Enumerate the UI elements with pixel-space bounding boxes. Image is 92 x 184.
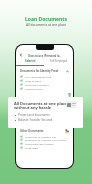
staticText: All Documents at one place — [14, 101, 68, 106]
staticText: Photocopy of Property File — [25, 135, 56, 138]
button[interactable]: Other Documents — [20, 129, 69, 133]
button[interactable] — [66, 101, 77, 108]
staticText: Self Employed — [50, 59, 68, 63]
button[interactable]: Salaried — [16, 59, 44, 66]
staticText: Other Documents — [20, 129, 44, 133]
staticText: Processing Fees Cheque — [25, 142, 54, 145]
staticText: Voter ID Card — [25, 79, 41, 82]
button[interactable]: All Documents at one place — [8, 97, 83, 128]
staticText: Applicant's Passport — [25, 83, 49, 86]
staticText: Salaried — [25, 59, 36, 63]
staticText: Loan Documents — [0, 16, 92, 23]
other: Chart — [65, 129, 69, 133]
other: Collapse — [66, 70, 69, 73]
staticText: Statement of Accounts of 6 Months — [25, 138, 67, 141]
button[interactable]: Back — [19, 53, 23, 57]
button[interactable]: Photocopy of Property File — [20, 135, 69, 138]
button[interactable]: Voter ID Card — [20, 79, 69, 82]
staticText: Protect and documents — [18, 113, 50, 117]
button[interactable]: Statement of Accounts of 6 Months — [20, 138, 69, 141]
button[interactable]: Applicant's Passport — [20, 83, 69, 86]
staticText: PAN card/Aadhar Card — [25, 75, 52, 78]
staticText: Balance Transfer Secured — [18, 118, 53, 122]
button[interactable]: Driving License — [20, 87, 69, 90]
staticText: without any hassle — [14, 105, 52, 110]
staticText: Documents for Identity Proof — [20, 69, 59, 73]
other: Pointer — [67, 93, 72, 101]
button[interactable]: PAN card/Aadhar Card — [20, 75, 69, 78]
staticText: Driving License — [25, 87, 43, 90]
staticText: Docs to use (Personal lo.. — [16, 54, 73, 58]
staticText: All documents at one place — [0, 23, 92, 27]
button[interactable]: Processing Fees Cheque — [20, 142, 69, 145]
staticText: Audit Sheet — [25, 146, 39, 149]
button[interactable]: Documents for Identity Proof — [20, 69, 69, 73]
button[interactable]: Audit Sheet — [20, 146, 69, 149]
button[interactable]: Self Employed — [44, 59, 73, 63]
